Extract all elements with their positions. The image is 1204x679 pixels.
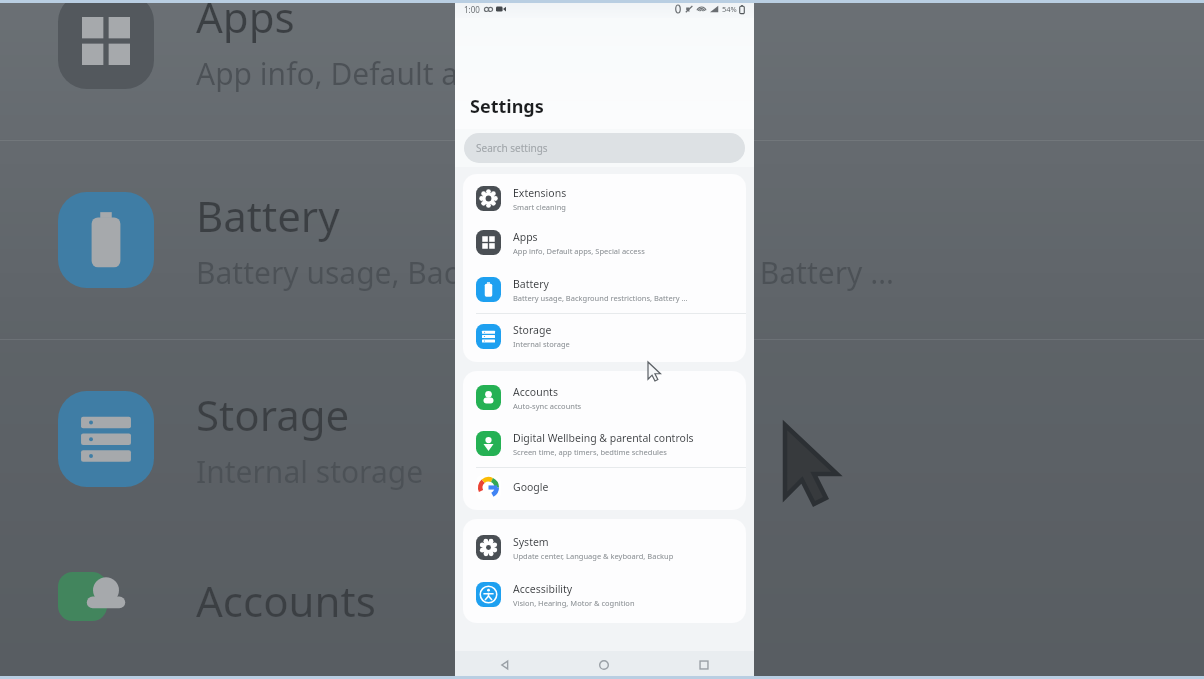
staticText: Auto-sync accounts (513, 401, 582, 411)
button[interactable]: Extensions (463, 178, 746, 219)
staticText: Apps (513, 230, 538, 244)
staticText: Search settings (476, 141, 548, 155)
staticText: Internal storage (513, 339, 570, 349)
staticText: Smart cleaning (513, 202, 566, 212)
button[interactable]: Accessibility (463, 571, 746, 618)
staticText: Battery (513, 277, 549, 291)
staticText: Update center, Language & keyboard, Back… (513, 551, 674, 561)
staticText: Accounts (196, 572, 376, 621)
button[interactable]: Back (455, 651, 554, 679)
staticText: Google (513, 480, 549, 494)
staticText: Internal storage (196, 451, 424, 492)
staticText: App info, Default apps, Special access (196, 53, 723, 94)
staticText: Accounts (513, 385, 558, 399)
staticText: Settings (470, 94, 544, 119)
staticText: 1:00 (464, 4, 480, 15)
staticText: System (513, 535, 549, 549)
staticText: Storage (513, 323, 552, 337)
staticText: Battery usage, Background restrictions, … (513, 293, 688, 303)
button[interactable]: System (463, 524, 746, 571)
button[interactable]: Digital Wellbeing & parental controls (463, 420, 746, 467)
staticText: Battery (196, 187, 340, 244)
staticText: Digital Wellbeing & parental controls (513, 431, 694, 445)
button[interactable]: Search settings (464, 133, 745, 163)
staticText: Vision, Hearing, Motor & cognition (513, 598, 635, 608)
staticText: Accessibility (513, 582, 573, 596)
button[interactable]: Accounts (463, 375, 746, 420)
button[interactable]: Google (463, 468, 746, 506)
staticText: Storage (196, 386, 350, 443)
staticText: Battery usage, Background restrictions, … (196, 252, 894, 293)
staticText: 54% (722, 4, 737, 14)
staticText: App info, Default apps, Special access (513, 246, 645, 256)
button[interactable]: Home (554, 651, 654, 679)
button[interactable]: Battery (463, 266, 746, 313)
button[interactable]: Apps (463, 219, 746, 266)
button[interactable]: Recent apps (654, 651, 754, 679)
staticText: Screen time, app timers, bedtime schedul… (513, 447, 667, 457)
staticText: Extensions (513, 186, 567, 200)
button[interactable]: Storage (463, 314, 746, 358)
staticText: Apps (196, 0, 295, 45)
